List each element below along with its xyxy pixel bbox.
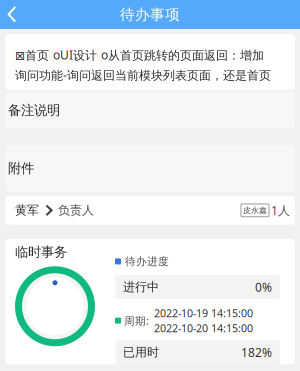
staticText: 已用时: [123, 345, 159, 360]
staticText: 2022-10-20 14:15:00: [154, 321, 253, 335]
staticText: 1人: [271, 202, 290, 218]
staticText: 进行中: [123, 280, 159, 294]
staticText: 待办进度: [125, 255, 169, 268]
button[interactable]: Back: [0, 0, 29, 29]
staticText: ⊠首页 oUI设计 o从首页跳转的页面返回：增加询问功能-询问返回当前模块列表页…: [15, 47, 271, 83]
staticText: 负责人: [58, 203, 94, 218]
staticText: 黄军: [15, 203, 39, 218]
button[interactable]: 黄军: [0, 196, 300, 225]
staticText: 0%: [255, 279, 272, 295]
staticText: 待办事项: [120, 5, 180, 23]
staticText: 备注说明: [8, 102, 60, 119]
staticText: 临时事务: [15, 244, 67, 260]
staticText: 2022-10-19 14:15:00: [154, 306, 253, 320]
staticText: 皮永鑫: [243, 205, 267, 215]
staticText: 182%: [241, 344, 272, 360]
staticText: 附件: [8, 160, 34, 177]
staticText: 周期:: [124, 314, 149, 328]
